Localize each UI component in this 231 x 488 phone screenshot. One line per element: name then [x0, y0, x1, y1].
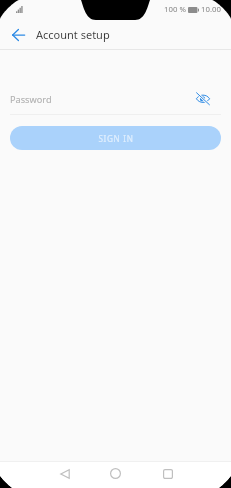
- button[interactable]: Toggle password visibility: [193, 88, 213, 108]
- staticText: 10.00: [201, 4, 221, 15]
- button[interactable]: Back: [54, 463, 75, 484]
- staticText: Account setup: [36, 27, 110, 42]
- button[interactable]: Home: [105, 463, 126, 484]
- button[interactable]: Recent apps: [157, 463, 178, 484]
- staticText: SIGN IN: [98, 133, 134, 144]
- button[interactable]: SIGN IN: [10, 126, 221, 150]
- staticText: Password: [10, 93, 52, 106]
- button[interactable]: Navigate up: [3, 22, 33, 48]
- staticText: 100 %: [164, 4, 186, 15]
